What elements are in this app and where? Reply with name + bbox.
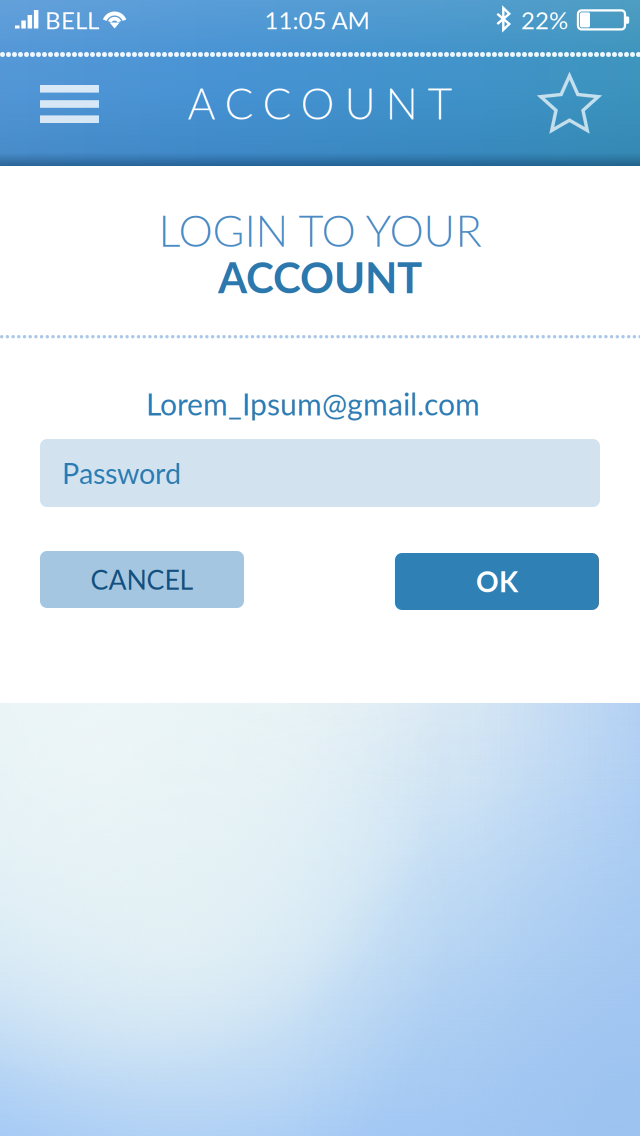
staticText: LOGIN TO YOUR — [158, 204, 481, 256]
staticText: BELL — [45, 6, 99, 34]
button[interactable]: Favorite — [537, 59, 640, 151]
button[interactable]: Menu — [0, 63, 99, 145]
staticText: ACCOUNT — [218, 252, 422, 302]
staticText: Lorem_Ipsum@gmail.com — [146, 386, 480, 422]
button[interactable]: OK — [395, 553, 599, 610]
staticText: 11:05 AM — [264, 6, 369, 34]
staticText: OK — [476, 565, 518, 598]
staticText: ACCOUNT — [187, 77, 452, 129]
staticText: CANCEL — [90, 563, 193, 595]
staticText: 22% — [521, 6, 568, 34]
staticText: Password — [62, 456, 181, 490]
button[interactable]: CANCEL — [40, 551, 244, 608]
